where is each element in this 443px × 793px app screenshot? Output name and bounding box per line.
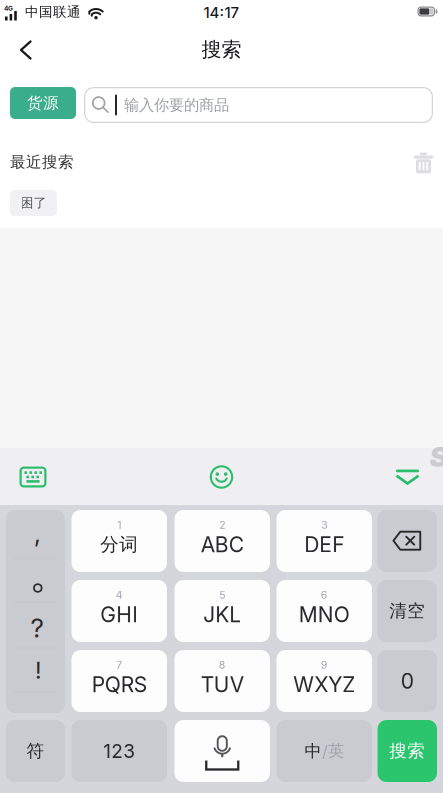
button[interactable]: 8 (174, 650, 270, 712)
staticText: MNO (299, 602, 350, 627)
staticText: 9 (321, 659, 328, 671)
button[interactable]: 3 (276, 510, 372, 572)
staticText: 2 (219, 519, 225, 531)
staticText: 5 (219, 589, 225, 601)
button[interactable]: 符 (6, 720, 65, 782)
button[interactable]: 0 (377, 650, 437, 712)
staticText: JKL (203, 602, 241, 627)
staticText: TUV (201, 672, 244, 697)
staticText: 搜索 (201, 37, 241, 62)
button[interactable] (411, 150, 435, 174)
button[interactable]: 1 (71, 510, 167, 572)
button[interactable] (174, 720, 270, 782)
button[interactable] (377, 510, 437, 572)
staticText: 14:17 (203, 3, 239, 21)
staticText: 0 (401, 668, 414, 694)
staticText: 中 (304, 740, 321, 762)
button[interactable]: 4 (71, 580, 167, 642)
staticText: 4 (116, 589, 123, 601)
button[interactable]: 中 (276, 720, 372, 782)
staticText: 3 (321, 519, 327, 531)
staticText: 货源 (27, 93, 59, 113)
button[interactable] (19, 466, 47, 488)
button[interactable]: 6 (276, 580, 372, 642)
staticText: , (34, 517, 41, 549)
button[interactable]: 搜索 (377, 720, 437, 782)
staticText: ? (30, 612, 43, 644)
staticText: 最近搜索 (10, 152, 74, 172)
staticText: 符 (26, 740, 44, 762)
staticText: 123 (103, 739, 135, 762)
staticText: ! (35, 655, 42, 684)
staticText: 8 (219, 659, 226, 671)
button[interactable]: 123 (71, 720, 167, 782)
staticText: 清空 (389, 600, 425, 622)
staticText: PQRS (92, 672, 147, 697)
staticText: GHI (100, 602, 138, 627)
staticText: 中国联通 (25, 3, 81, 20)
button[interactable]: 9 (276, 650, 372, 712)
button[interactable]: , (6, 510, 65, 713)
button[interactable]: 清空 (377, 580, 437, 642)
button[interactable]: 5 (174, 580, 270, 642)
staticText: S (429, 441, 443, 473)
staticText: 困了 (20, 195, 46, 211)
staticText: 7 (116, 659, 122, 671)
staticText: 6 (321, 589, 328, 601)
button[interactable]: 7 (71, 650, 167, 712)
staticText: 1 (117, 519, 121, 531)
button[interactable]: 2 (174, 510, 270, 572)
staticText: /英 (322, 741, 344, 761)
button[interactable] (0, 0, 52, 44)
staticText: 输入你要的商品 (124, 96, 229, 115)
button[interactable] (395, 468, 419, 486)
button[interactable] (209, 465, 233, 489)
staticText: WXYZ (293, 672, 355, 697)
staticText: 搜索 (389, 740, 425, 762)
button[interactable]: 输入你要的商品 (84, 87, 433, 123)
button[interactable]: 货源 (10, 87, 76, 119)
staticText: DEF (304, 532, 344, 557)
staticText: 4G (4, 5, 13, 12)
staticText: 分词 (100, 533, 138, 556)
button[interactable]: 困了 (10, 190, 57, 216)
staticText: ABC (201, 532, 244, 557)
